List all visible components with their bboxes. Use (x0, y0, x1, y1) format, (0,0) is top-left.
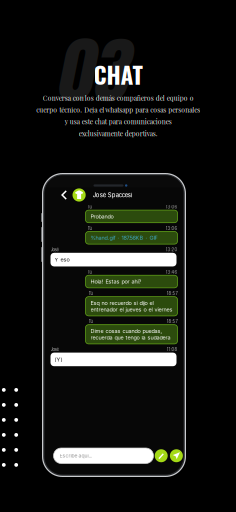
staticText: Tú (88, 319, 92, 324)
staticText: José (50, 247, 58, 252)
staticText: 13:06 (165, 226, 177, 231)
staticText: Escribe aquí... (59, 453, 91, 459)
staticText: 03 (55, 16, 127, 124)
staticText: %hand.gif · 187.56KB · GIF (90, 234, 157, 241)
button[interactable]: Escribe aquí... (53, 448, 153, 463)
staticText: Conversa con los demás compañeros del eq… (36, 94, 200, 138)
staticText: Tú (88, 291, 92, 296)
staticText: Dime cosas cuando puedas, recuerda que t… (90, 328, 170, 341)
staticText: Esq no recuerdo si dijo el entrenador el… (90, 300, 172, 313)
staticText: 13:20 (165, 247, 177, 252)
staticText: 18:57 (166, 291, 177, 296)
button[interactable]: Send message (170, 449, 183, 462)
staticText: 11:08 (166, 347, 177, 352)
staticText: Hola! Estas por ahi? (90, 278, 141, 285)
staticText: 13:06 (165, 204, 177, 209)
staticText: Tú (87, 270, 91, 275)
staticText: Y eso (54, 256, 69, 263)
button[interactable]: Attach file (155, 449, 168, 462)
staticText: (Y) (54, 356, 62, 363)
button[interactable]: José Spaccesi (44, 187, 183, 202)
staticText: Tú (87, 204, 91, 209)
staticText: CHAT (93, 57, 142, 92)
staticText: Tú (87, 226, 91, 231)
staticText: 13:46 (165, 270, 177, 275)
staticText: 18:57 (166, 319, 177, 324)
staticText: José (50, 347, 58, 352)
staticText: José Spaccesi (93, 191, 132, 199)
staticText: Probando (90, 213, 113, 220)
